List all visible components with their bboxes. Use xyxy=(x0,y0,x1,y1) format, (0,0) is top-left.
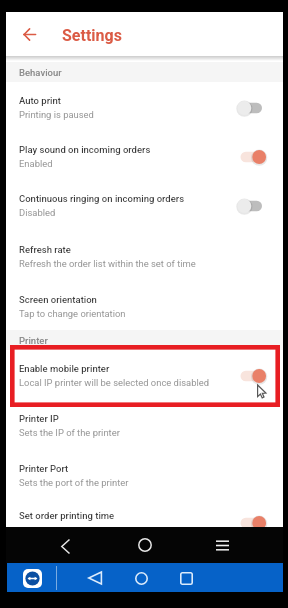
button[interactable]: Switch off xyxy=(237,97,277,119)
staticText: Behaviour xyxy=(19,67,62,78)
button[interactable]: Switch on xyxy=(237,512,277,527)
staticText: Refresh rate xyxy=(19,244,71,255)
staticText: Settings xyxy=(62,26,122,45)
staticText: Printer Port xyxy=(19,463,69,474)
button[interactable]: Recents xyxy=(174,566,198,590)
staticText: Sets the IP of the printer xyxy=(19,427,120,438)
staticText: Printer IP xyxy=(19,413,59,424)
button[interactable]: QuickSupport xyxy=(23,569,42,588)
staticText: Tap to change orientation xyxy=(19,308,126,319)
staticText: Enabled xyxy=(19,158,53,169)
button[interactable]: Recents xyxy=(210,533,234,557)
button[interactable]: Continuous ringing on incoming orders xyxy=(6,180,283,229)
button[interactable]: Refresh rate xyxy=(6,231,283,280)
staticText: Continuous ringing on incoming orders xyxy=(19,193,185,204)
staticText: Printing is paused xyxy=(19,109,94,120)
button[interactable]: Back xyxy=(53,534,77,558)
button[interactable]: Home xyxy=(129,566,153,590)
button[interactable]: Printer IP xyxy=(6,400,283,449)
button[interactable]: Home xyxy=(133,533,157,557)
staticText: Sets the port of the printer xyxy=(19,477,129,488)
staticText: Play sound on incoming orders xyxy=(19,144,151,155)
staticText: Auto print xyxy=(19,95,61,106)
staticText: Refresh the order list within the set of… xyxy=(19,258,196,269)
button[interactable]: Switch on xyxy=(237,146,277,168)
button[interactable]: Set order printing time xyxy=(6,497,283,527)
button[interactable]: Switch off xyxy=(237,195,277,217)
staticText: Set order printing time xyxy=(19,510,115,521)
button[interactable]: Play sound on incoming orders xyxy=(6,131,283,180)
staticText: Printer xyxy=(19,335,48,346)
staticText: Disabled xyxy=(19,207,56,218)
button[interactable]: Switch on xyxy=(237,365,277,387)
button[interactable]: Back xyxy=(83,566,107,590)
button[interactable]: Enable mobile printer xyxy=(6,350,283,399)
button[interactable]: Back xyxy=(17,22,41,46)
button[interactable]: Auto print xyxy=(6,82,283,131)
staticText: Screen orientation xyxy=(19,294,97,305)
staticText: Local IP printer will be selected once d… xyxy=(19,377,209,388)
staticText: Enable mobile printer xyxy=(19,363,110,374)
button[interactable]: Printer Port xyxy=(6,450,283,499)
button[interactable]: Screen orientation xyxy=(6,281,283,330)
